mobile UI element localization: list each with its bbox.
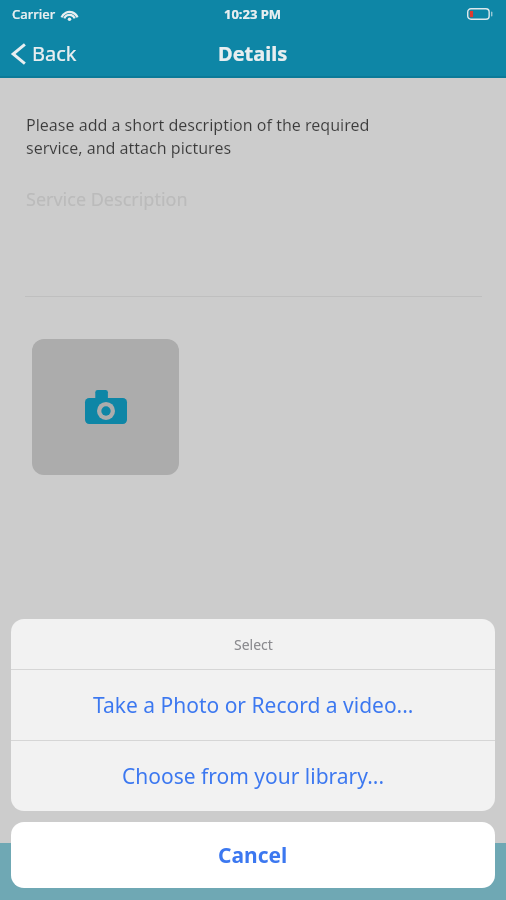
staticText: Service Description <box>26 187 188 212</box>
staticText: Cancel <box>218 841 288 870</box>
staticText: 10:23 PM <box>224 5 282 23</box>
button[interactable]: Choose from your library... <box>11 741 495 811</box>
staticText: Take a Photo or Record a video... <box>93 691 414 720</box>
staticText: Carrier <box>12 5 56 23</box>
button[interactable]: Attach a picture <box>32 339 179 475</box>
staticText: Select <box>234 635 273 654</box>
staticText: Details <box>218 40 288 67</box>
staticText: Please add a short description of the re… <box>26 114 370 159</box>
staticText: Choose from your library... <box>122 762 385 791</box>
staticText: Back <box>32 40 77 67</box>
button[interactable]: Take a Photo or Record a video... <box>11 670 495 740</box>
button[interactable]: Back <box>0 34 89 73</box>
button[interactable]: Cancel <box>11 822 495 888</box>
